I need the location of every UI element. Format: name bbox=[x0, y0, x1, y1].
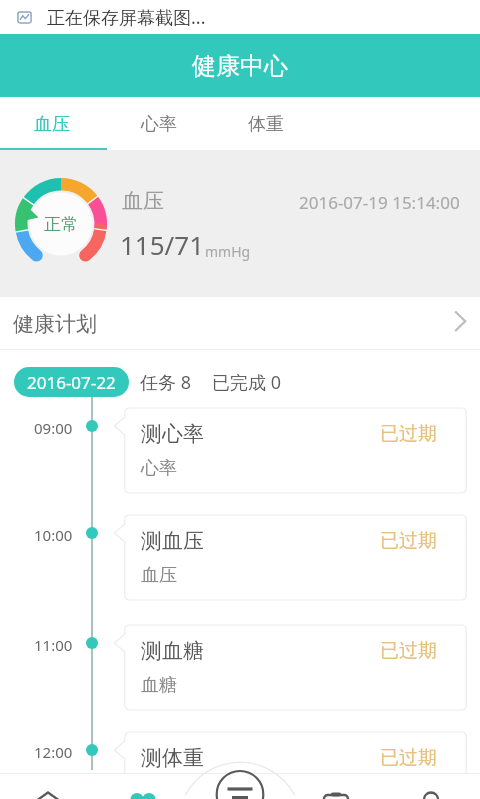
staticText: 已过期 bbox=[380, 639, 437, 663]
staticText: 11:00 bbox=[34, 635, 73, 655]
staticText: 测心率 bbox=[141, 421, 204, 447]
staticText: 已过期 bbox=[380, 529, 437, 553]
button[interactable]: 体重 bbox=[214, 97, 321, 150]
button[interactable]: Menu bbox=[0, 773, 480, 799]
staticText: 12:00 bbox=[34, 742, 73, 762]
staticText: 09:00 bbox=[34, 418, 73, 438]
staticText: mmHg bbox=[205, 242, 251, 261]
button[interactable]: 血压 bbox=[0, 97, 107, 150]
staticText: 正在保存屏幕截图... bbox=[47, 5, 206, 30]
staticText: 健康中心 bbox=[192, 51, 288, 81]
button[interactable]: Home bbox=[22, 774, 74, 799]
staticText: 血压 bbox=[141, 564, 177, 587]
staticText: 心率 bbox=[141, 457, 177, 480]
staticText: 测体重 bbox=[141, 745, 204, 771]
staticText: 115/71 bbox=[120, 227, 205, 262]
button[interactable]: 测血糖 bbox=[114, 625, 467, 711]
button[interactable]: 测血压 bbox=[114, 515, 467, 601]
other: Open health plan bbox=[454, 310, 467, 332]
button[interactable]: Health bbox=[117, 774, 169, 799]
staticText: 体重 bbox=[141, 781, 177, 799]
staticText: 2016-07-22 bbox=[27, 371, 116, 394]
staticText: 体重 bbox=[248, 113, 284, 136]
staticText: 血压 bbox=[34, 113, 70, 136]
button[interactable]: Messages bbox=[310, 774, 362, 799]
staticText: 心率 bbox=[141, 113, 177, 136]
staticText: 已完成 0 bbox=[212, 370, 281, 395]
staticText: 已过期 bbox=[380, 422, 437, 446]
button[interactable]: 心率 bbox=[107, 97, 214, 150]
button[interactable]: 健康计划 bbox=[0, 297, 480, 350]
staticText: 2016-07-19 15:14:00 bbox=[299, 191, 460, 214]
staticText: 健康计划 bbox=[13, 311, 97, 337]
staticText: 血糖 bbox=[141, 674, 177, 697]
button[interactable]: 测体重 bbox=[114, 732, 467, 799]
staticText: 已过期 bbox=[380, 746, 437, 770]
staticText: 血压 bbox=[122, 188, 164, 214]
staticText: 10:00 bbox=[34, 525, 73, 545]
button[interactable]: 测心率 bbox=[114, 408, 467, 494]
staticText: 测血压 bbox=[141, 528, 204, 554]
button[interactable]: Profile bbox=[405, 774, 457, 799]
staticText: 任务 8 bbox=[140, 370, 191, 395]
button[interactable]: 2016-07-22 bbox=[14, 367, 129, 397]
staticText: 测血糖 bbox=[141, 638, 204, 664]
staticText: 正常 bbox=[44, 214, 78, 235]
